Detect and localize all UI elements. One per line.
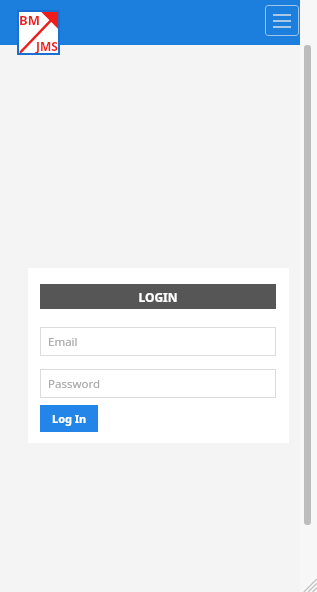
staticText: Password: [48, 376, 101, 392]
button[interactable]: Menu: [265, 5, 299, 36]
staticText: JMS: [36, 38, 58, 54]
button[interactable]: Password: [40, 369, 276, 398]
staticText: LOGIN: [138, 289, 178, 305]
button[interactable]: Email: [40, 327, 276, 356]
button[interactable]: Log In: [40, 405, 98, 432]
staticText: Email: [48, 334, 78, 350]
staticText: Log In: [52, 411, 87, 426]
staticText: BM: [19, 11, 40, 29]
